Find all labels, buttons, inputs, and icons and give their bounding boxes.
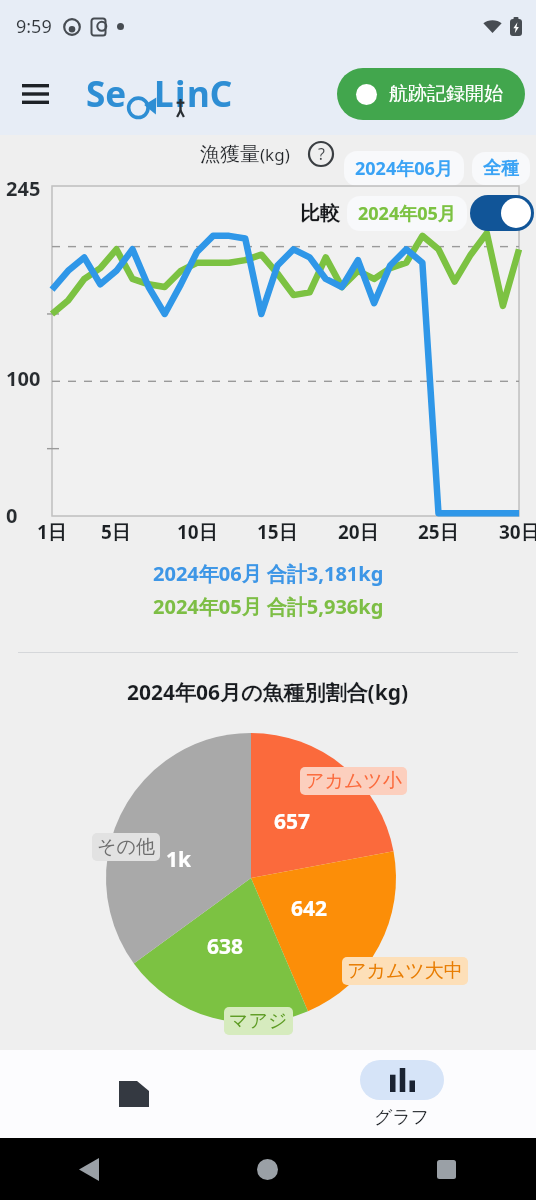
staticText: マアジ — [229, 1009, 288, 1033]
button[interactable]: 2024年05月 — [347, 196, 467, 231]
staticText: 全種 — [483, 157, 519, 180]
staticText: 1日 — [37, 519, 67, 545]
button[interactable]: 航跡記録開始 — [337, 68, 525, 120]
button[interactable]: Help — [306, 139, 336, 169]
staticText: 0 — [6, 502, 18, 529]
button[interactable]: 全種 — [472, 152, 530, 185]
staticText: 5日 — [101, 519, 131, 545]
button[interactable]: Menu — [10, 69, 60, 119]
staticText: Se — [86, 70, 127, 118]
staticText: 2024年06月の魚種別割合(kg) — [127, 678, 409, 707]
staticText: 30日 — [499, 519, 536, 545]
staticText: 657 — [274, 807, 311, 836]
staticText: 漁獲量 — [200, 142, 260, 167]
staticText: 245 — [6, 175, 41, 202]
staticText: 100 — [6, 365, 41, 392]
staticText: ? — [318, 143, 325, 165]
staticText: 25日 — [418, 519, 459, 545]
staticText: 642 — [291, 894, 328, 923]
staticText: その他 — [97, 835, 155, 859]
staticText: 10日 — [177, 519, 218, 545]
staticText: グラフ — [374, 1106, 430, 1129]
staticText: nC — [187, 70, 233, 118]
staticText: 2024年06月 — [355, 156, 453, 181]
button[interactable]: グラフ — [268, 1050, 536, 1138]
button[interactable]: Records — [0, 1050, 268, 1138]
button[interactable]: 2024年06月 — [344, 151, 464, 186]
staticText: 2024年05月 合計5,936kg — [153, 593, 384, 620]
button[interactable]: Comparison toggle — [470, 195, 534, 231]
staticText: i — [175, 70, 186, 118]
staticText: 2024年05月 — [358, 201, 456, 226]
staticText: 15日 — [257, 519, 298, 545]
staticText: 2024年06月 合計3,181kg — [153, 560, 384, 587]
staticText: 638 — [207, 932, 244, 961]
staticText: L — [154, 70, 174, 118]
staticText: アカムツ大中 — [347, 959, 463, 983]
staticText: (kg) — [260, 143, 290, 166]
staticText: 比較 — [300, 201, 340, 226]
staticText: アカムツ小 — [305, 769, 402, 793]
staticText: 20日 — [338, 519, 379, 545]
staticText: 航跡記録開始 — [389, 82, 503, 106]
staticText: 9:59 — [16, 14, 52, 39]
staticText: 1k — [166, 845, 192, 874]
